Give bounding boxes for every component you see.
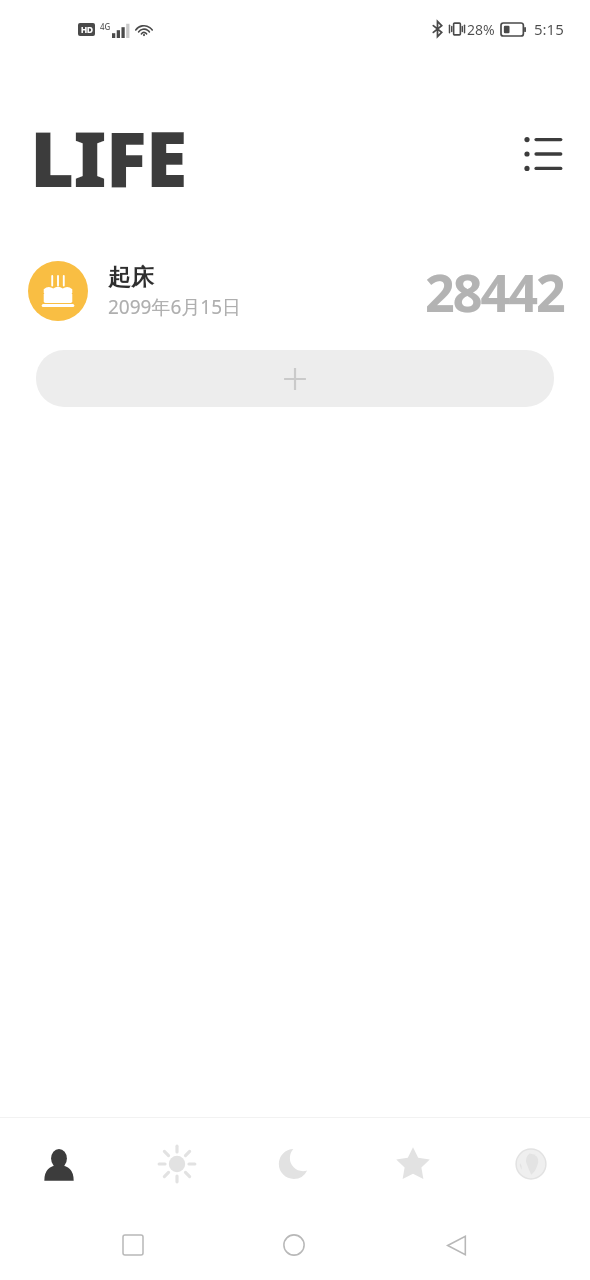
staticText: 2099年6月15日 bbox=[108, 294, 242, 320]
staticText: LIFE bbox=[30, 106, 187, 202]
staticText: HD bbox=[81, 24, 93, 35]
staticText: 4G bbox=[100, 21, 111, 32]
button[interactable]: Home bbox=[266, 1217, 322, 1273]
button[interactable]: Profile bbox=[0, 1118, 118, 1210]
staticText: 28442 bbox=[425, 256, 564, 327]
staticText: 5:15 bbox=[534, 19, 564, 39]
staticText: 起床 bbox=[108, 263, 154, 292]
button[interactable]: Menu bbox=[518, 128, 570, 180]
staticText: 28% bbox=[467, 20, 495, 39]
button[interactable]: Favorites bbox=[354, 1118, 472, 1210]
button[interactable]: Night bbox=[236, 1118, 354, 1210]
button[interactable]: 起床 bbox=[0, 254, 590, 328]
button[interactable]: Recents bbox=[105, 1217, 161, 1273]
button[interactable]: Day bbox=[118, 1118, 236, 1210]
button[interactable]: Back bbox=[428, 1217, 484, 1273]
button[interactable]: Add bbox=[36, 350, 554, 407]
button[interactable]: World bbox=[472, 1118, 590, 1210]
